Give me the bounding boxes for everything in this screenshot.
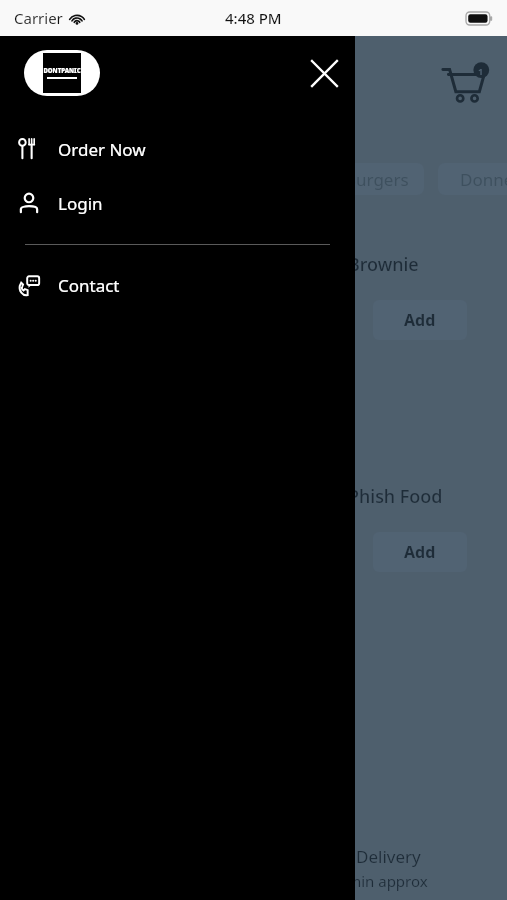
staticText: 1 bbox=[478, 65, 484, 77]
staticText: Add bbox=[404, 541, 436, 563]
button[interactable]: Donner bbox=[438, 163, 507, 195]
button[interactable]: Dont Panic logo bbox=[24, 50, 100, 96]
button[interactable]: Add bbox=[373, 532, 467, 572]
button[interactable]: Burgers bbox=[330, 163, 424, 195]
button[interactable]: Order Now bbox=[0, 132, 355, 166]
button[interactable]: Close menu bbox=[300, 49, 348, 97]
button[interactable]: Contact bbox=[0, 268, 355, 302]
staticText: Burgers bbox=[345, 168, 409, 191]
staticText: Add bbox=[404, 309, 436, 331]
staticText: Login bbox=[58, 192, 103, 215]
staticText: Delivery bbox=[356, 845, 421, 868]
button[interactable]: Cart bbox=[440, 60, 488, 108]
staticText: Phish Food bbox=[348, 484, 443, 509]
staticText: 30min approx bbox=[330, 871, 428, 891]
staticText: DONTPANIC bbox=[43, 67, 81, 75]
staticText: 4:48 PM bbox=[225, 8, 282, 28]
staticText: Donner bbox=[460, 168, 507, 191]
staticText: Contact bbox=[58, 274, 120, 297]
button[interactable]: Add bbox=[373, 300, 467, 340]
staticText: Brownie bbox=[348, 252, 419, 277]
button[interactable]: Login bbox=[0, 186, 355, 220]
staticText: Order Now bbox=[58, 138, 146, 161]
staticText: Carrier bbox=[14, 8, 63, 28]
